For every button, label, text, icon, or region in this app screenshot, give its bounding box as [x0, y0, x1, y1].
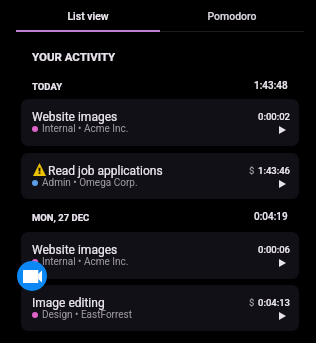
staticText: 1:43:46 [258, 165, 291, 176]
button[interactable]: Pomodoro [160, 0, 304, 32]
button[interactable]: Website images [21, 99, 299, 146]
button[interactable]: Start timer [277, 310, 288, 321]
staticText: $ [249, 165, 255, 176]
staticText: 0:00:06 [258, 244, 291, 255]
staticText: 0:04:19 [254, 211, 288, 223]
button[interactable]: Website images [21, 232, 299, 279]
staticText: Image editing [32, 296, 105, 310]
staticText: Website images [32, 243, 118, 257]
button[interactable]: Image editing [21, 285, 299, 331]
button[interactable]: Start timer [277, 178, 288, 189]
staticText: Read job applications [48, 164, 163, 178]
staticText: YOUR ACTIVITY [32, 50, 116, 63]
staticText: 0:04:13 [258, 297, 291, 308]
staticText: Website images [32, 110, 118, 124]
staticText: Pomodoro [207, 10, 257, 22]
staticText: 0:00:02 [258, 111, 291, 122]
button[interactable]: Read job applications [21, 153, 299, 199]
button[interactable]: Start timer [277, 257, 288, 268]
staticText: 1:43:48 [254, 80, 288, 92]
staticText: Design • EastForrest [42, 309, 133, 321]
staticText: TODAY [32, 81, 63, 92]
staticText: MON, 27 DEC [32, 212, 90, 223]
staticText: Admin • Omega Corp. [42, 177, 138, 189]
staticText: Internal • Acme Inc. [42, 256, 129, 268]
staticText: List view [67, 10, 109, 22]
button[interactable]: Start timer [277, 124, 288, 135]
staticText: $ [249, 297, 255, 308]
button[interactable]: Record video [17, 261, 47, 291]
button[interactable]: List view [16, 0, 160, 32]
staticText: Internal • Acme Inc. [42, 123, 129, 135]
